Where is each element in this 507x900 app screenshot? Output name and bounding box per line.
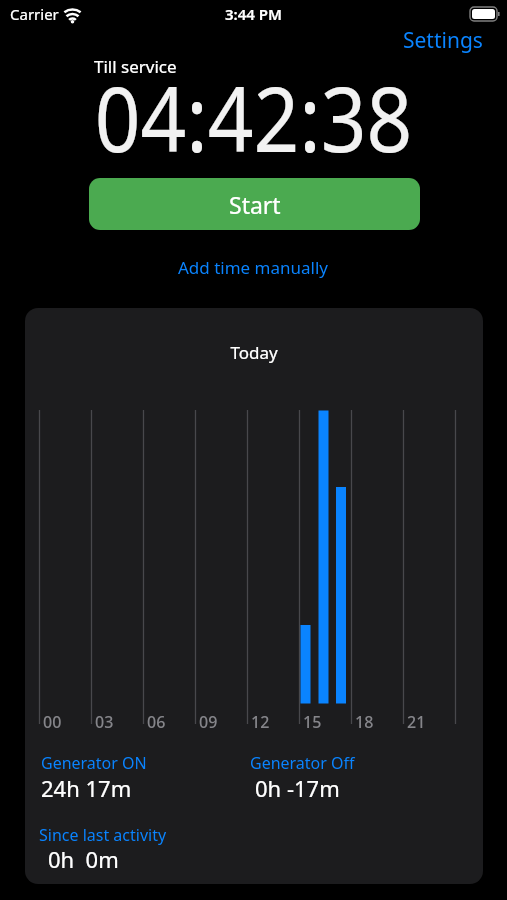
staticText: 15 [303,711,322,733]
button[interactable]: Start [89,178,420,230]
staticText: 03 [95,711,114,733]
staticText: 0h 0m [48,844,119,874]
staticText: Add time manually [178,256,329,279]
staticText: 3:44 PM [0,4,507,24]
staticText: Carrier [10,4,59,24]
staticText: Generator ON [41,752,147,774]
staticText: 12 [251,711,270,733]
staticText: 24h 17m [41,773,132,803]
staticText: Till service [94,55,177,78]
staticText: 21 [407,711,426,733]
staticText: Today [25,341,483,364]
staticText: 06 [147,711,166,733]
staticText: Settings [403,26,483,55]
button[interactable]: Settings [390,25,490,55]
staticText: 09 [199,711,218,733]
staticText: Start [229,189,281,220]
staticText: 18 [355,711,374,733]
staticText: 04:42:38 [0,55,507,178]
staticText: Generator Off [250,752,355,774]
staticText: 0h -17m [255,773,340,803]
staticText: Since last activity [39,824,167,846]
staticText: 00 [43,711,62,733]
button[interactable]: Add time manually [168,253,338,281]
